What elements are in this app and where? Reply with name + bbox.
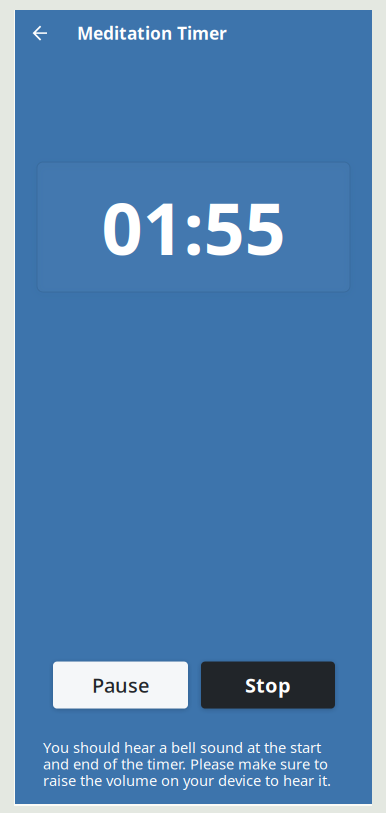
staticText: Stop	[245, 672, 291, 698]
staticText: Pause	[92, 672, 149, 698]
staticText: 01:55	[101, 179, 285, 275]
button[interactable]: Stop	[201, 662, 335, 709]
button[interactable]: Back	[25, 18, 55, 48]
staticText: You should hear a bell sound at the star…	[43, 738, 331, 790]
button[interactable]: Pause	[53, 662, 188, 709]
staticText: Meditation Timer	[77, 21, 227, 44]
